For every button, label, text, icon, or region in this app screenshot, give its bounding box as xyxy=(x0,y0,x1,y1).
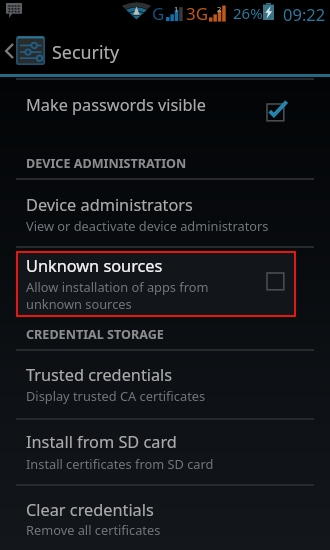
button[interactable]: Unchecked xyxy=(257,263,293,299)
staticText: Unknown sources xyxy=(26,255,163,277)
button[interactable]: Checked xyxy=(257,94,293,130)
staticText: 1 xyxy=(174,4,179,14)
staticText: Device administrators xyxy=(26,194,193,216)
staticText: Allow installation of apps from xyxy=(26,278,209,295)
staticText: G xyxy=(152,2,165,24)
staticText: Remove all certificates xyxy=(26,521,161,538)
staticText: 3G xyxy=(186,2,209,24)
staticText: Display trusted CA certificates xyxy=(26,387,206,404)
staticText: unknown sources xyxy=(26,295,132,312)
button[interactable] xyxy=(0,350,330,417)
button[interactable]: Navigate up xyxy=(0,22,330,73)
staticText: Install certificates from SD card xyxy=(26,455,214,472)
staticText: 26% xyxy=(233,3,263,23)
staticText: CREDENTIAL STORAGE xyxy=(26,326,164,343)
staticText: 09:22 xyxy=(283,3,326,25)
staticText: Clear credentials xyxy=(26,499,154,521)
staticText: 2 xyxy=(217,4,222,14)
staticText: Make passwords visible xyxy=(26,94,206,116)
button[interactable] xyxy=(0,180,330,247)
staticText: Security xyxy=(52,40,120,64)
button[interactable] xyxy=(0,419,330,484)
button[interactable] xyxy=(0,486,330,550)
button[interactable] xyxy=(0,80,330,138)
staticText: Trusted credentials xyxy=(26,364,173,386)
staticText: Install from SD card xyxy=(26,431,177,453)
button[interactable] xyxy=(16,251,296,317)
staticText: DEVICE ADMINISTRATION xyxy=(26,155,187,172)
staticText: View or deactivate device administrators xyxy=(26,217,269,234)
